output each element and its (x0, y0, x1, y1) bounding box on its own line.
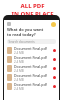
button[interactable]: Document Final.pdf (7, 73, 56, 82)
staticText: Document Final.pdf (14, 46, 47, 51)
staticText: 2.4 MB (14, 87, 24, 91)
button[interactable]: Search documents (7, 39, 56, 44)
button[interactable]: Document Final.pdf (7, 55, 56, 64)
staticText: 2.4 MB (14, 78, 24, 82)
staticText: 2.4 MB (14, 60, 24, 64)
button[interactable]: Document Final.pdf (7, 64, 56, 73)
staticText: 2.4 MB (14, 51, 24, 55)
button[interactable]: Document Final.pdf (7, 82, 56, 91)
staticText: Document Final.pdf (14, 82, 47, 87)
staticText: Document Final.pdf (14, 73, 47, 78)
staticText: Document Final.pdf (14, 55, 47, 60)
staticText: IN ONE PLACE (11, 10, 54, 18)
button[interactable]: Document Final.pdf (7, 46, 56, 55)
staticText: ALL PDF (20, 2, 45, 10)
staticText: Document Final.pdf (14, 64, 47, 69)
staticText: 2.4 MB (14, 69, 24, 73)
staticText: What do you want to read today? (7, 27, 44, 37)
staticText: Search documents (7, 40, 35, 44)
